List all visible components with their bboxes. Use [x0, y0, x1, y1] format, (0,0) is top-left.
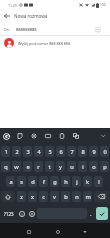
button[interactable]: t — [45, 161, 54, 172]
staticText: m — [85, 193, 91, 201]
button[interactable]: Shift — [1, 191, 15, 202]
button[interactable]: Back — [79, 226, 91, 238]
button[interactable]: Backspace — [94, 191, 109, 202]
staticText: z — [20, 193, 23, 201]
button[interactable]: a — [6, 176, 15, 187]
button[interactable]: h — [61, 176, 70, 187]
button[interactable]: 1 — [1, 146, 10, 157]
staticText: Do: — [4, 27, 10, 32]
staticText: Wyślij pod numer 888 888 888. — [18, 41, 72, 46]
button[interactable]: ?123 — [0, 204, 17, 223]
button[interactable]: p — [100, 161, 109, 172]
button[interactable]: z — [17, 191, 26, 202]
staticText: c — [42, 193, 45, 201]
button[interactable]: 9 — [89, 146, 98, 157]
staticText: r — [37, 163, 40, 171]
button[interactable]: o — [89, 161, 98, 172]
staticText: 3 — [26, 148, 30, 156]
button[interactable]: Voice input — [27, 204, 36, 223]
staticText: 1 — [4, 148, 8, 156]
button[interactable]: Home — [52, 226, 64, 238]
staticText: g — [53, 178, 57, 186]
staticText: b — [64, 193, 68, 201]
staticText: 7 — [70, 148, 74, 156]
staticText: w — [14, 163, 19, 171]
button[interactable]: Settings — [28, 130, 40, 142]
button[interactable]: Wyślij pod numer 888 888 888. — [0, 36, 110, 50]
button[interactable]: 4 — [34, 146, 43, 157]
button[interactable]: m — [83, 191, 92, 202]
button[interactable]: k — [83, 176, 92, 187]
staticText: a — [9, 178, 13, 186]
button[interactable]: x — [28, 191, 37, 202]
staticText: 888888888 — [16, 27, 37, 32]
button[interactable]: 0 — [100, 146, 109, 157]
button[interactable]: 6 — [56, 146, 65, 157]
button[interactable]: 8 — [78, 146, 87, 157]
staticText: x — [31, 193, 34, 201]
button[interactable]: g — [50, 176, 59, 187]
staticText: 5 — [48, 148, 52, 156]
button[interactable]: . — [88, 204, 94, 223]
button[interactable]: 2 — [12, 146, 21, 157]
button[interactable]: q — [1, 161, 10, 172]
button[interactable]: More options — [97, 130, 109, 142]
button[interactable]: f — [39, 176, 48, 187]
button[interactable]: Emoji — [17, 204, 27, 223]
staticText: n — [75, 193, 79, 201]
staticText: . — [90, 210, 92, 218]
staticText: h — [64, 178, 68, 186]
button[interactable]: u — [67, 161, 76, 172]
staticText: p — [103, 163, 107, 171]
staticText: s — [20, 178, 23, 186]
button[interactable]: l — [94, 176, 103, 187]
button[interactable]: Back — [0, 10, 14, 22]
button[interactable]: y — [56, 161, 65, 172]
staticText: q — [4, 163, 8, 171]
staticText: 6 — [59, 148, 63, 156]
button[interactable]: w — [12, 161, 21, 172]
staticText: o — [92, 163, 96, 171]
button[interactable]: e — [23, 161, 32, 172]
staticText: v — [53, 193, 56, 201]
button[interactable]: v — [50, 191, 59, 202]
staticText: j — [76, 178, 78, 186]
staticText: u — [70, 163, 74, 171]
button[interactable]: b — [61, 191, 70, 202]
button[interactable]: s — [17, 176, 26, 187]
staticText: 4 — [37, 148, 41, 156]
button[interactable]: 3 — [23, 146, 32, 157]
staticText: Nowa rozmowa — [14, 13, 48, 19]
button[interactable]: Stickers — [14, 130, 26, 142]
button[interactable]: 7 — [67, 146, 76, 157]
button[interactable]: Google search — [0, 130, 12, 142]
button[interactable]: i — [78, 161, 87, 172]
button[interactable]: GIF — [42, 130, 54, 142]
staticText: 2 — [15, 148, 19, 156]
button[interactable]: Dialpad — [92, 24, 103, 35]
staticText: k — [86, 178, 89, 186]
button[interactable]: Translate — [70, 130, 82, 142]
staticText: e — [26, 163, 30, 171]
button[interactable]: c — [39, 191, 48, 202]
button[interactable]: Send — [96, 207, 108, 220]
button[interactable]: d — [28, 176, 37, 187]
staticText: ?123 — [4, 211, 14, 217]
button[interactable]: Recents — [23, 226, 35, 238]
staticText: d — [31, 178, 35, 186]
staticText: i — [82, 163, 84, 171]
button[interactable]: n — [72, 191, 81, 202]
staticText: 100 — [100, 3, 106, 7]
staticText: l — [98, 178, 100, 186]
staticText: 9 — [92, 148, 96, 156]
button[interactable]: j — [72, 176, 81, 187]
button[interactable]: Clipboard — [56, 130, 68, 142]
staticText: t — [48, 163, 51, 171]
button[interactable]: 5 — [45, 146, 54, 157]
staticText: f — [43, 178, 45, 186]
button[interactable]: r — [34, 161, 43, 172]
staticText: y — [59, 163, 62, 171]
staticText: 0 — [103, 148, 107, 156]
staticText: 11:29 — [8, 3, 17, 8]
